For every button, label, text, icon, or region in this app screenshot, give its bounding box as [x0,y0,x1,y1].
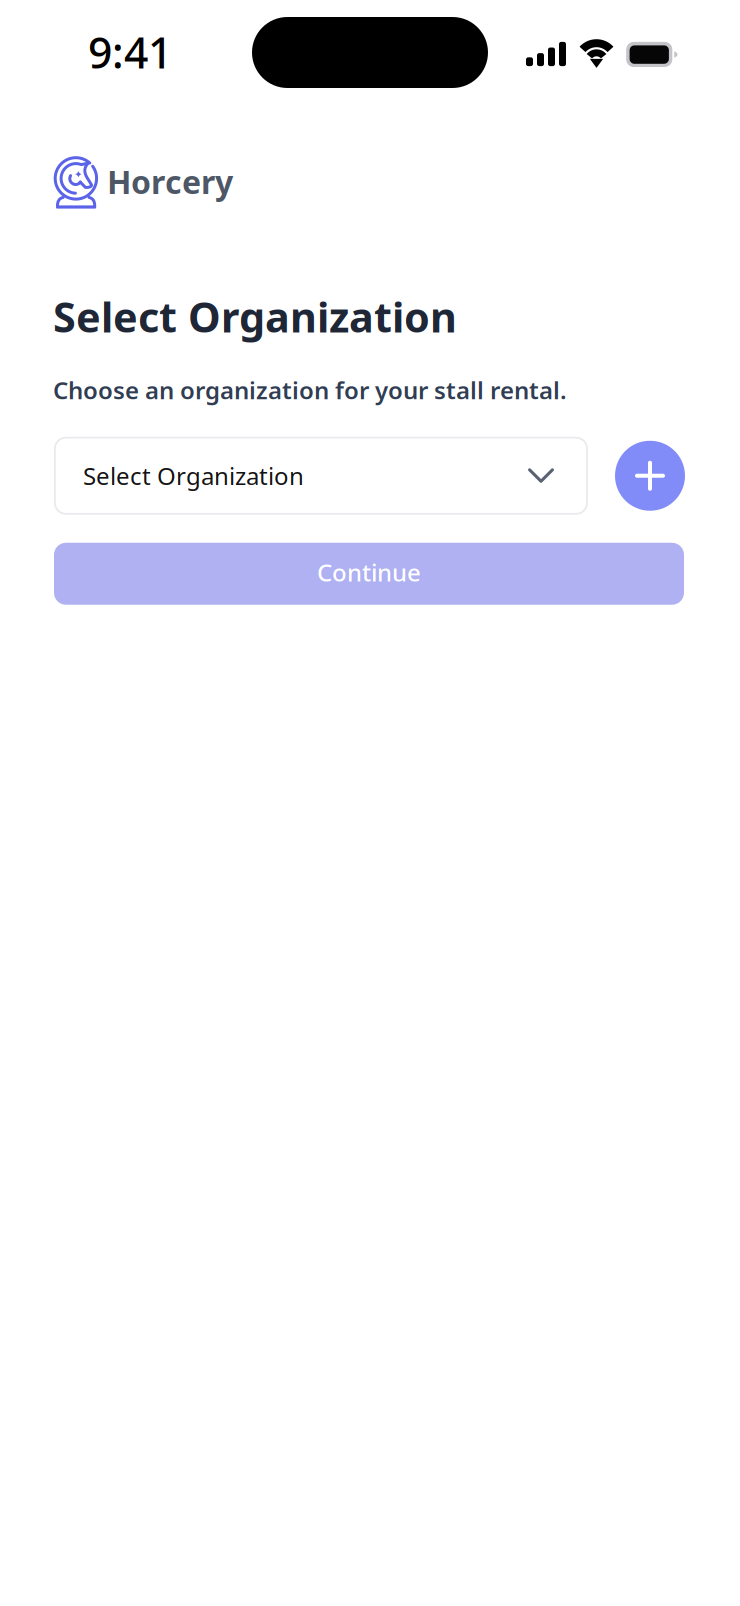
staticText: Select Organization [53,289,457,344]
staticText: Select Organization [83,460,304,492]
button[interactable]: Continue [54,543,684,605]
staticText: Continue [317,556,421,588]
staticText: Choose an organization for your stall re… [53,374,567,406]
button[interactable]: Select Organization [54,437,588,515]
staticText: 9:41 [88,24,172,80]
button[interactable]: Add organization [615,441,685,511]
staticText: Horcery [107,160,233,203]
